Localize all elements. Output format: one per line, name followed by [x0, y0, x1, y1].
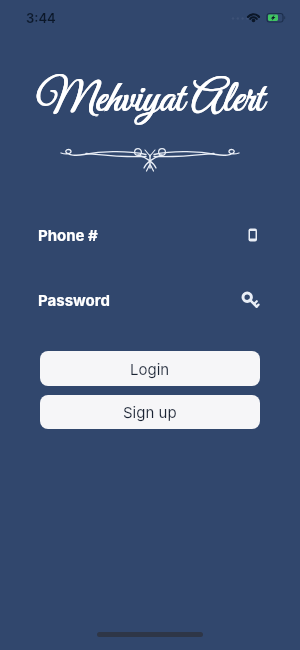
staticText: Mehviyat Alert — [36, 73, 264, 128]
staticText: Mehviyat Alert — [37, 73, 265, 128]
button[interactable]: Phone # — [38, 221, 262, 249]
button[interactable]: Login — [40, 351, 260, 386]
staticText: Phone # — [38, 226, 98, 244]
staticText: 3:44 — [26, 10, 56, 26]
staticText: Login — [130, 360, 170, 378]
staticText: Mehviyat Alert — [36, 74, 264, 129]
button[interactable]: Password — [38, 286, 262, 314]
button[interactable]: Sign up — [40, 395, 260, 429]
staticText: Sign up — [123, 403, 177, 421]
staticText: Password — [38, 291, 110, 309]
